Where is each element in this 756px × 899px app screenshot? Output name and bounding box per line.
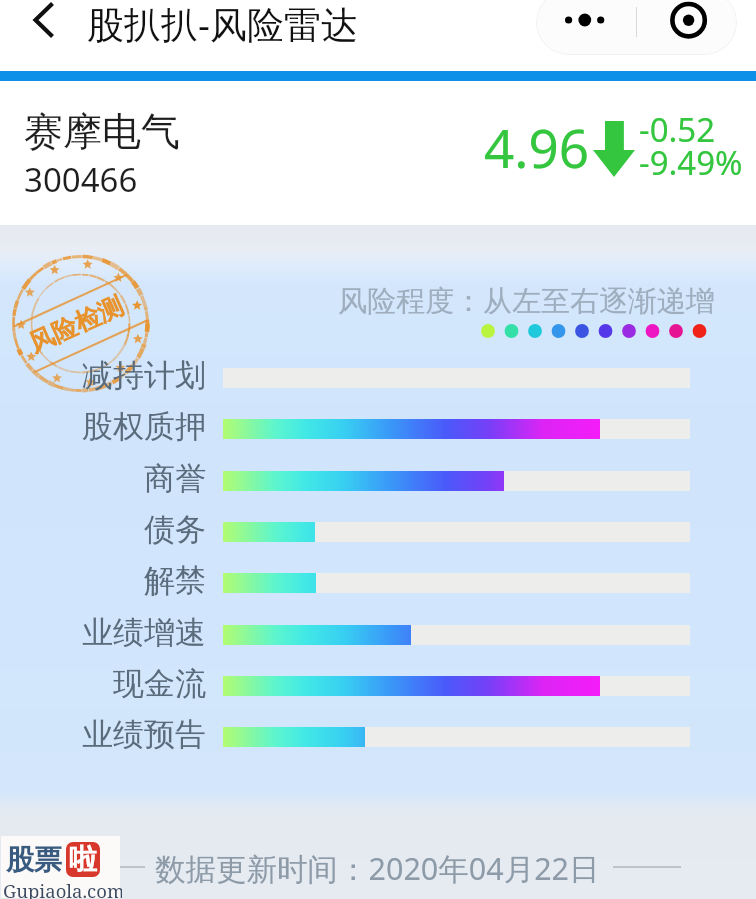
button[interactable]: 业绩预告 bbox=[0, 711, 756, 762]
button[interactable]: 减持计划 bbox=[0, 352, 756, 403]
staticText: -0.52 bbox=[639, 107, 716, 152]
staticText: 风险检测 bbox=[24, 290, 128, 359]
staticText: 赛摩电气 bbox=[24, 107, 180, 156]
staticText: 业绩增速 bbox=[82, 613, 206, 652]
staticText: 解禁 bbox=[144, 561, 206, 600]
staticText: 现金流 bbox=[113, 664, 206, 703]
staticText: 股扒扒-风险雷达 bbox=[87, 0, 358, 49]
staticText: 300466 bbox=[24, 157, 138, 202]
button[interactable]: 债务 bbox=[0, 506, 756, 557]
staticText: 商誉 bbox=[144, 459, 206, 498]
staticText: 数据更新时间：2020年04月22日 bbox=[155, 847, 600, 889]
button[interactable]: 现金流 bbox=[0, 660, 756, 711]
staticText: 减持计划 bbox=[82, 356, 206, 395]
button[interactable]: 业绩增速 bbox=[0, 609, 756, 660]
staticText: -9.49% bbox=[639, 140, 743, 185]
button[interactable]: 股票 bbox=[1, 836, 120, 898]
button[interactable]: Close mini program bbox=[637, 0, 737, 55]
button[interactable]: 解禁 bbox=[0, 557, 756, 608]
button[interactable]: 股权质押 bbox=[0, 403, 756, 454]
staticText: 业绩预告 bbox=[82, 715, 206, 754]
staticText: 4.96 bbox=[484, 111, 590, 183]
staticText: 股权质押 bbox=[82, 407, 206, 446]
staticText: Gupiaola.com bbox=[3, 878, 122, 899]
button[interactable]: Back bbox=[10, 0, 80, 56]
button[interactable]: More options bbox=[536, 0, 636, 55]
staticText: 债务 bbox=[144, 510, 206, 549]
staticText: 股票 bbox=[6, 842, 62, 877]
staticText: 啦 bbox=[69, 842, 97, 877]
button[interactable]: 商誉 bbox=[0, 455, 756, 506]
staticText: 风险程度：从左至右逐渐递增 bbox=[338, 283, 715, 320]
